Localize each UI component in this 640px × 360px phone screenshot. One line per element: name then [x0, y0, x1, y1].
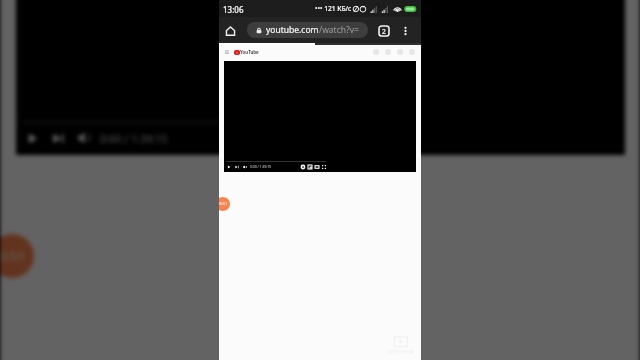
staticText: 13:06	[223, 4, 244, 15]
staticText: 0:51	[0, 247, 26, 265]
button[interactable]: 0:00 / 1:39:15	[224, 61, 416, 172]
staticText: ••• 121 КБ/с	[315, 4, 352, 13]
button[interactable]: Tabs	[378, 25, 389, 36]
button[interactable]: youtube.com	[247, 22, 368, 38]
staticText: YouTube	[240, 49, 259, 55]
button[interactable]: Recording timer	[0, 234, 34, 278]
staticText: /watch?v=	[319, 24, 359, 36]
staticText: 2	[382, 27, 386, 36]
button[interactable]: Home	[225, 25, 236, 36]
staticText: VIDEOSHOW	[387, 349, 414, 355]
staticText: 0:51	[219, 201, 228, 207]
button[interactable]: 0:00 / 1:39:15	[16, 0, 625, 155]
staticText: 0:00 / 1:39:15	[100, 131, 168, 146]
staticText: 0:00 / 1:39:15	[250, 164, 272, 169]
button[interactable]: Recording timer	[219, 197, 230, 211]
button[interactable]: More options	[400, 25, 411, 36]
staticText: youtube.com	[266, 24, 319, 36]
